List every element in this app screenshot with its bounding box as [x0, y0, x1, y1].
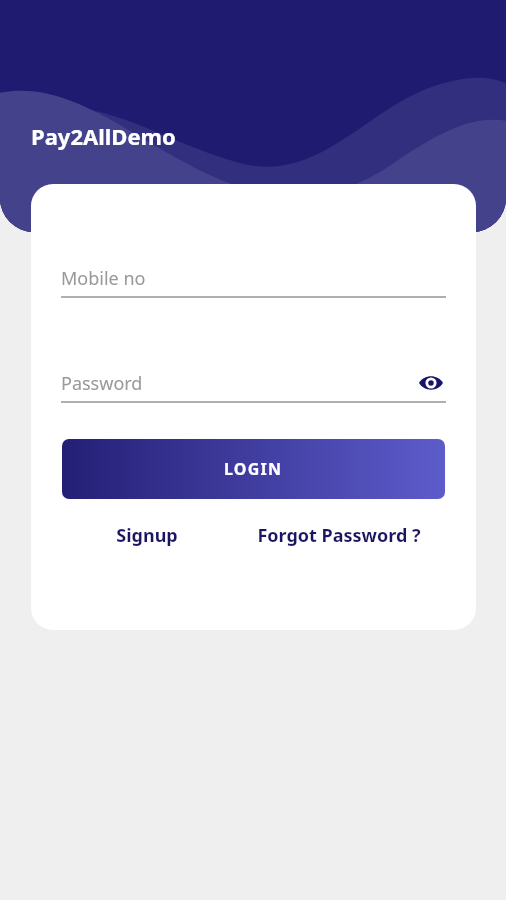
- staticText: Signup: [116, 523, 178, 548]
- staticText: Pay2AllDemo: [31, 121, 176, 151]
- button[interactable]: Forgot Password ?: [232, 523, 445, 548]
- button[interactable]: Password: [61, 371, 446, 403]
- button[interactable]: LOGIN: [62, 439, 445, 499]
- staticText: Password: [61, 371, 143, 396]
- staticText: Mobile no: [61, 266, 146, 291]
- button[interactable]: Show password: [416, 368, 446, 398]
- staticText: Forgot Password ?: [257, 523, 421, 548]
- button[interactable]: Mobile no: [61, 266, 446, 298]
- staticText: LOGIN: [224, 458, 283, 480]
- button[interactable]: Signup: [62, 523, 232, 548]
